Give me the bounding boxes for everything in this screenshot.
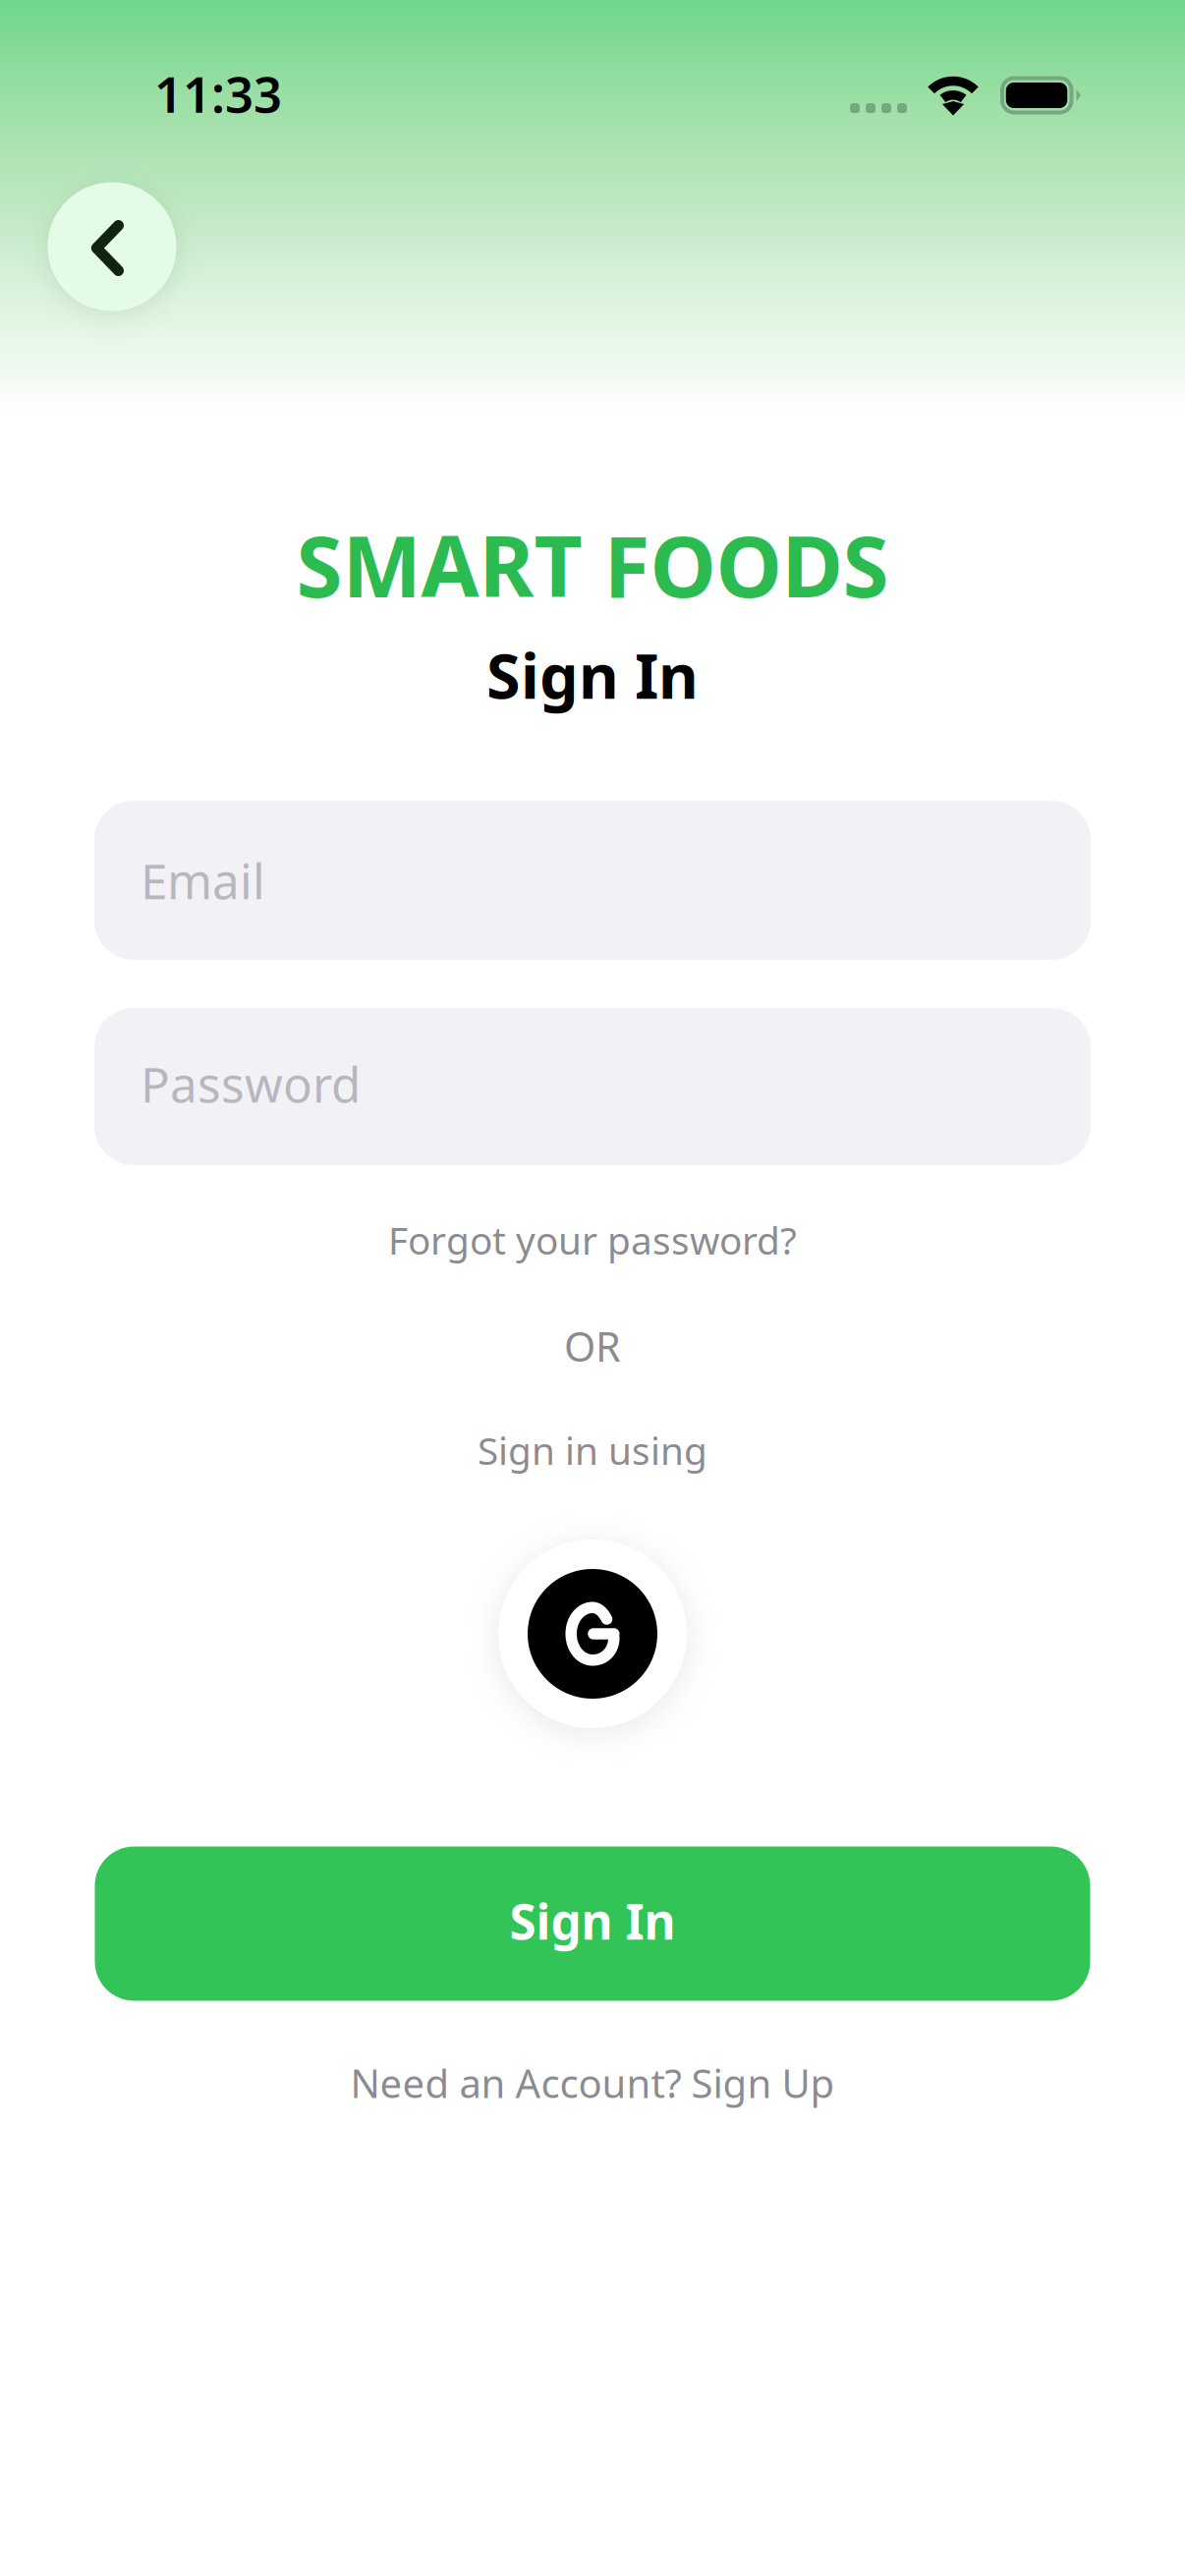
button[interactable]: Password	[94, 1008, 1091, 1165]
staticText: Email	[141, 848, 265, 912]
button[interactable]: Back	[48, 182, 176, 311]
button[interactable]: Forgot your password?	[388, 1215, 797, 1265]
staticText: Sign In	[486, 634, 699, 716]
staticText: 11:33	[154, 60, 282, 126]
button[interactable]: Email	[94, 801, 1091, 960]
staticText: SMART FOODS	[296, 509, 889, 621]
staticText: Forgot your password?	[388, 1215, 797, 1265]
staticText: Sign In	[509, 1888, 676, 1953]
button[interactable]: Sign In	[95, 1847, 1090, 2001]
staticText: Password	[141, 1051, 361, 1116]
button[interactable]: Need an Account? Sign Up	[350, 2057, 835, 2109]
staticText: Sign in using	[478, 1425, 707, 1475]
staticText: Need an Account? Sign Up	[350, 2057, 835, 2109]
staticText: OR	[564, 1319, 621, 1373]
button[interactable]: Sign in with Google	[480, 1521, 705, 1747]
